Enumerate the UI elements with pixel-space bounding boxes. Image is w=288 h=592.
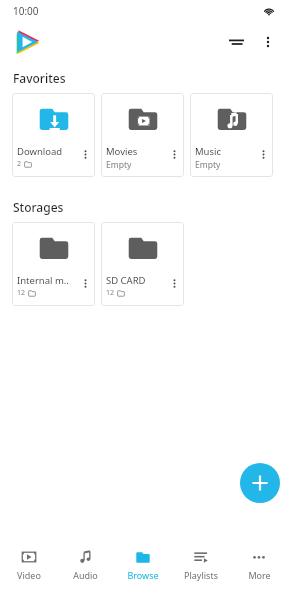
staticText: 2	[17, 159, 22, 169]
staticText: Audio	[73, 569, 98, 581]
staticText: Internal m..	[17, 274, 69, 287]
button[interactable]: More options for Movies	[165, 145, 183, 163]
button[interactable]: Add	[240, 463, 280, 503]
button[interactable]: More options for Music	[254, 145, 272, 163]
button[interactable]: More options for Internal m..	[76, 274, 94, 292]
staticText: 10:00	[13, 4, 39, 18]
staticText: 12	[17, 288, 26, 298]
staticText: Browse	[127, 569, 159, 581]
staticText: Storages	[13, 199, 64, 215]
button[interactable]: Download	[12, 93, 95, 177]
button[interactable]: Audio	[57, 540, 114, 581]
staticText: SD CARD	[106, 274, 146, 287]
button[interactable]: Playlists	[172, 540, 230, 581]
staticText: Playlists	[184, 569, 218, 581]
staticText: 12	[106, 288, 115, 298]
staticText: Empty	[106, 159, 132, 171]
button[interactable]: Movies	[101, 93, 184, 177]
staticText: Movies	[106, 145, 138, 158]
button[interactable]: Video	[0, 540, 57, 581]
button[interactable]: Internal m..	[12, 222, 95, 306]
button[interactable]: Sort	[220, 26, 252, 58]
button[interactable]: More	[230, 540, 288, 581]
button[interactable]: More options for SD CARD	[165, 274, 183, 292]
button[interactable]: Browse	[114, 540, 172, 581]
staticText: More	[248, 569, 271, 581]
staticText: Music	[195, 145, 222, 158]
button[interactable]: More options	[252, 26, 284, 58]
staticText: Favorites	[13, 70, 66, 86]
staticText: Empty	[195, 159, 221, 171]
button[interactable]: SD CARD	[101, 222, 184, 306]
staticText: Video	[17, 569, 41, 581]
button[interactable]: More options for Download	[76, 145, 94, 163]
button[interactable]: App logo	[14, 29, 40, 55]
button[interactable]: Music	[190, 93, 273, 177]
staticText: Download	[17, 145, 63, 158]
